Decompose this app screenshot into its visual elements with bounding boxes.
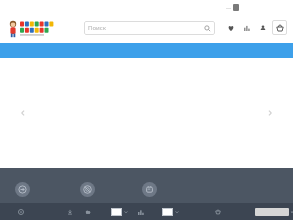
- button[interactable]: Compare: [241, 22, 253, 34]
- button[interactable]: Input field: [255, 208, 293, 216]
- button[interactable]: Downloads: [65, 207, 75, 217]
- button[interactable]: Next slide: [263, 106, 277, 120]
- button[interactable]: Stats: [136, 207, 146, 217]
- staticText: Поиск: [88, 24, 106, 32]
- button[interactable]: Window 1: [111, 208, 128, 216]
- button[interactable]: Shop: [213, 207, 223, 217]
- button[interactable]: Wishlist: [225, 22, 237, 34]
- button[interactable]: Login: [15, 182, 30, 197]
- button[interactable]: Support: [80, 182, 95, 197]
- button[interactable]: Home logo: [6, 18, 56, 38]
- button[interactable]: Window 2: [162, 208, 179, 216]
- button[interactable]: Поиск: [84, 21, 215, 35]
- button[interactable]: Previous slide: [16, 106, 30, 120]
- button[interactable]: Cloud: [83, 207, 93, 217]
- button[interactable]: Orders: [142, 182, 157, 197]
- button[interactable]: Cart: [272, 20, 287, 35]
- button[interactable]: Account: [257, 22, 269, 34]
- button[interactable]: Start: [16, 207, 26, 217]
